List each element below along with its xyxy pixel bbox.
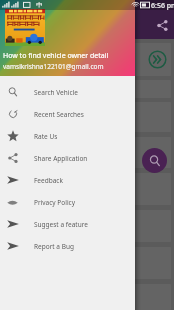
staticText: vamsikrishna122101@gmail.com bbox=[3, 62, 104, 71]
staticText: INDIA bbox=[2, 198, 22, 205]
button[interactable]: Recent Searches bbox=[0, 103, 135, 125]
staticText: Suggest a feature bbox=[34, 220, 88, 229]
staticText: 6:56 pm bbox=[151, 1, 174, 11]
button[interactable] bbox=[0, 80, 171, 98]
button[interactable]: Feedback bbox=[0, 169, 135, 191]
button[interactable] bbox=[0, 137, 171, 168]
staticText: Rate Us bbox=[34, 132, 58, 141]
button[interactable]: Search Vehicle bbox=[0, 81, 135, 103]
staticText: Search Vehicle bbox=[34, 88, 78, 97]
button[interactable] bbox=[0, 247, 171, 279]
button[interactable]: Rate Us bbox=[0, 125, 135, 147]
button[interactable]: Share bbox=[153, 16, 171, 34]
button[interactable] bbox=[0, 43, 171, 76]
button[interactable]: Report a Bug bbox=[0, 235, 135, 257]
staticText: Recent Searches bbox=[34, 110, 84, 119]
staticText: Report a Bug bbox=[34, 242, 74, 251]
staticText: How to find vehicle owner detail bbox=[3, 51, 109, 61]
button[interactable]: INDIA bbox=[0, 173, 171, 205]
staticText: Privacy Policy bbox=[34, 198, 76, 207]
button[interactable] bbox=[0, 210, 171, 242]
staticText: Share Application bbox=[34, 154, 88, 163]
button[interactable]: Privacy Policy bbox=[0, 191, 135, 213]
button[interactable]: Share Application bbox=[0, 147, 135, 169]
button[interactable]: Search bbox=[142, 148, 167, 173]
staticText: Feedback bbox=[34, 176, 63, 185]
button[interactable] bbox=[0, 102, 171, 132]
button[interactable]: Suggest a feature bbox=[0, 213, 135, 235]
button[interactable] bbox=[0, 284, 171, 310]
